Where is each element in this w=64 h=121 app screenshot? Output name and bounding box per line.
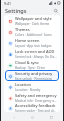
staticText: Wallpaper and style (15, 16, 52, 21)
button[interactable]: Themes (5, 26, 59, 37)
button[interactable]: Cloud & sync (5, 59, 59, 70)
button[interactable]: Search settings (52, 7, 59, 14)
button[interactable]: Safety and emergency (5, 92, 59, 103)
staticText: Face unlock · Permissions (15, 77, 53, 81)
staticText: Wallpaper · Dark theme (15, 22, 50, 26)
button[interactable]: Recent apps (45, 114, 57, 121)
staticText: Safety and emergency (15, 93, 57, 98)
staticText: Backup · Sync · Drive (15, 66, 45, 70)
staticText: Location (15, 82, 31, 87)
staticText: Lock screen and AOD (15, 49, 55, 54)
staticText: Colors · Additional · Icons (15, 33, 52, 37)
staticText: Accessibility feedback (15, 103, 56, 108)
staticText: Layout · App icon badges (15, 44, 52, 48)
button[interactable]: Security and privacy (5, 70, 59, 81)
staticText: Medical info · Emergency alerts (15, 99, 57, 103)
staticText: Cloud & sync (15, 60, 39, 65)
button[interactable]: Home (26, 114, 38, 121)
button[interactable]: Lock screen and AOD (5, 48, 59, 59)
staticText: Themes (15, 27, 30, 32)
button[interactable]: Accessibility feedback (5, 103, 59, 112)
staticText: Home screen (15, 38, 40, 43)
button[interactable]: Home screen (5, 37, 59, 48)
staticText: Security and privacy (15, 71, 53, 76)
staticText: Screen lock · Always On Display (15, 55, 57, 59)
staticText: 9:41 (4, 1, 11, 6)
button[interactable]: Location (5, 81, 59, 92)
staticText: Screen reader · Text and display (15, 109, 57, 112)
staticText: Location · Nearby (15, 88, 41, 92)
staticText: Settings (5, 7, 27, 14)
button[interactable]: Wallpaper and style (5, 15, 59, 26)
